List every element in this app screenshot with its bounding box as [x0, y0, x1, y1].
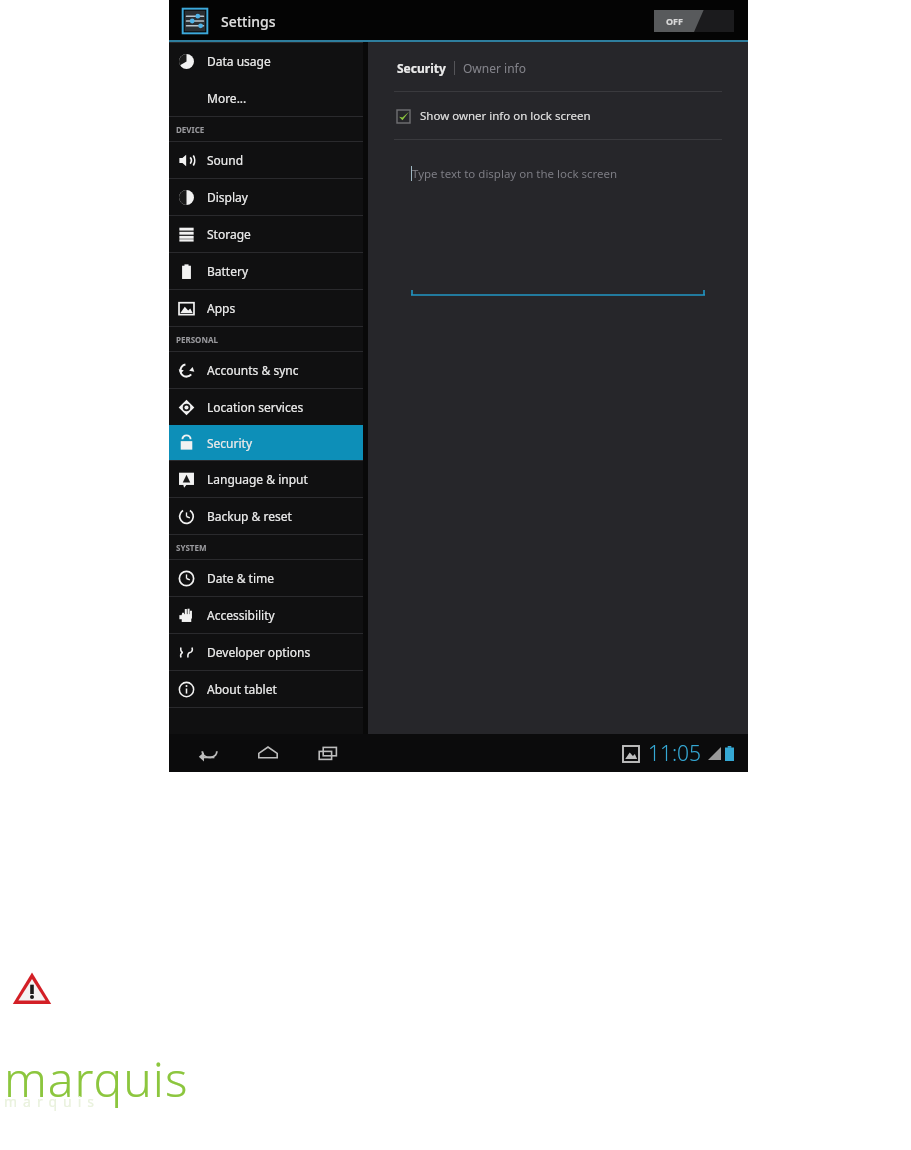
staticText: Storage — [207, 226, 251, 242]
staticText: SYSTEM — [176, 542, 207, 553]
staticText: 11:05 — [648, 739, 702, 768]
button[interactable]: More... — [169, 79, 363, 116]
staticText: DEVICE — [176, 124, 205, 135]
button[interactable]: Language & input — [169, 461, 363, 497]
staticText: Date & time — [207, 570, 275, 586]
button[interactable]: Apps — [169, 290, 363, 326]
button[interactable]: Sound — [169, 142, 363, 178]
staticText: More... — [207, 90, 247, 106]
staticText: Developer options — [207, 644, 311, 660]
button[interactable]: Recent apps — [311, 736, 345, 770]
staticText: marquis — [4, 1092, 101, 1111]
staticText: Owner info — [463, 60, 526, 76]
button[interactable]: Back — [191, 736, 225, 770]
button[interactable]: Date & time — [169, 560, 363, 596]
staticText: Accounts & sync — [207, 362, 299, 378]
staticText: Data usage — [207, 53, 271, 69]
button[interactable]: Accessibility — [169, 597, 363, 633]
staticText: Language & input — [207, 471, 308, 487]
staticText: PERSONAL — [176, 334, 218, 345]
staticText: Security — [397, 60, 446, 76]
button[interactable]: Type text to display on the lock screen — [411, 166, 705, 296]
staticText: Backup & reset — [207, 508, 292, 524]
button[interactable]: Data usage — [169, 43, 363, 79]
button[interactable]: Settings — [181, 7, 209, 35]
staticText: marquis — [4, 1046, 189, 1111]
staticText: Sound — [207, 152, 244, 168]
button[interactable]: Display — [169, 179, 363, 215]
staticText: Battery — [207, 263, 249, 279]
staticText: Type text to display on the lock screen — [412, 166, 618, 182]
staticText: Apps — [207, 300, 236, 316]
staticText: Accessibility — [207, 607, 275, 623]
staticText: Settings — [221, 12, 276, 31]
button[interactable]: Owner info — [463, 60, 526, 76]
staticText: OFF — [666, 15, 684, 27]
button[interactable]: Show owner info on lock screen — [397, 108, 591, 124]
button[interactable]: Toggle off — [654, 10, 734, 32]
button[interactable]: Security — [397, 60, 446, 76]
staticText: Location services — [207, 399, 304, 415]
staticText: Security — [207, 435, 253, 451]
staticText: Display — [207, 189, 248, 205]
button[interactable]: Battery — [169, 253, 363, 289]
staticText: About tablet — [207, 681, 277, 697]
staticText: Show owner info on lock screen — [420, 108, 591, 124]
button[interactable]: Storage — [169, 216, 363, 252]
button[interactable]: Home — [251, 736, 285, 770]
button[interactable]: Backup & reset — [169, 498, 363, 534]
button[interactable]: Location services — [169, 389, 363, 425]
button[interactable]: Accounts & sync — [169, 352, 363, 388]
button[interactable]: Security — [169, 425, 363, 460]
button[interactable]: Developer options — [169, 634, 363, 670]
button[interactable]: About tablet — [169, 671, 363, 707]
